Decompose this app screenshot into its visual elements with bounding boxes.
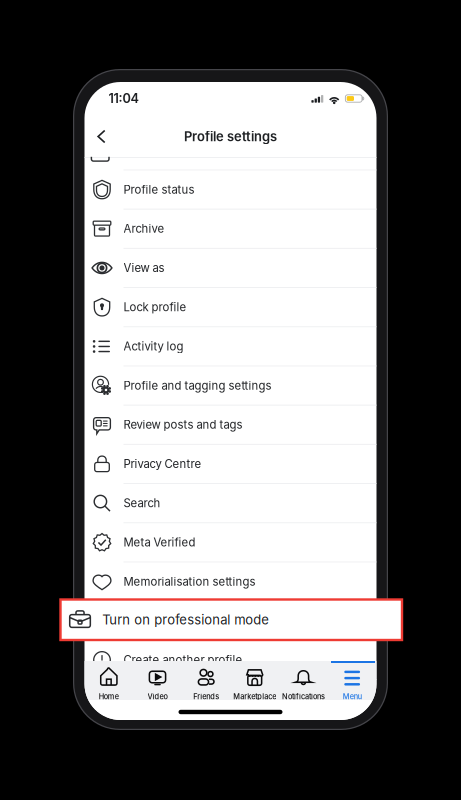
staticText: Menu	[343, 692, 362, 701]
staticText: Turn on professional mode	[102, 612, 269, 628]
staticText: View as	[123, 261, 164, 275]
staticText: Profile status	[123, 183, 194, 196]
button[interactable]: Marketplace	[230, 661, 279, 700]
staticText: Profile and tagging settings	[123, 379, 271, 392]
button[interactable]: Search	[84, 484, 376, 523]
button[interactable]: Video	[133, 661, 182, 700]
button[interactable]: Meta Verified	[84, 523, 376, 562]
staticText: Notifications	[282, 692, 325, 701]
staticText: Review posts and tags	[123, 418, 242, 432]
button[interactable]: View as	[84, 249, 376, 288]
staticText: Profile settings	[184, 129, 277, 144]
staticText: Home	[99, 692, 119, 701]
button[interactable]: Review posts and tags	[84, 406, 376, 445]
staticText: Friends	[193, 692, 219, 701]
staticText: Memorialisation settings	[123, 575, 255, 588]
staticText: 11:04	[108, 91, 138, 106]
staticText: Video	[147, 692, 167, 701]
button[interactable]: Friends	[182, 661, 230, 700]
button[interactable]: Notifications	[279, 661, 328, 700]
button[interactable]: Home	[84, 661, 133, 700]
staticText: Archive	[123, 222, 164, 236]
button[interactable]: Lock profile	[84, 288, 376, 327]
button[interactable]: Privacy Centre	[84, 445, 376, 484]
staticText: Lock profile	[123, 300, 186, 314]
button[interactable]: Archive	[84, 210, 376, 249]
staticText: Turn on professional mode	[123, 614, 268, 628]
staticText: Marketplace	[233, 692, 276, 701]
button[interactable]: Back	[84, 115, 120, 158]
staticText: Create another profile	[123, 653, 242, 667]
staticText: Privacy Centre	[123, 457, 201, 471]
button[interactable]: Activity log	[84, 327, 376, 366]
button[interactable]: Profile status	[84, 170, 376, 210]
button[interactable]: Turn on professional mode	[84, 602, 376, 641]
staticText: Search	[123, 496, 160, 510]
button[interactable]: Menu	[328, 661, 376, 700]
button[interactable]: Memorialisation settings	[84, 562, 376, 602]
staticText: Meta Verified	[123, 535, 195, 549]
staticText: Activity log	[123, 339, 183, 353]
button[interactable]: Create another profile	[84, 641, 376, 680]
button[interactable]: Profile and tagging settings	[84, 366, 376, 406]
